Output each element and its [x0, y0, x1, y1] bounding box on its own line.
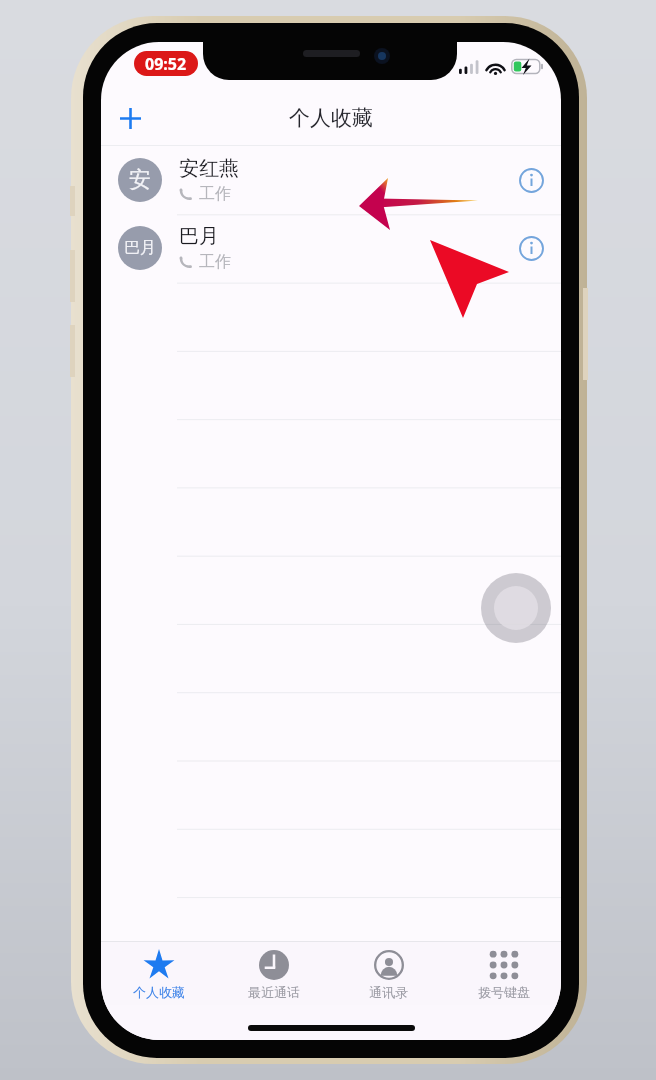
staticText: 工作: [199, 252, 231, 272]
button[interactable]: 最近通话: [216, 942, 331, 1000]
button[interactable]: 安: [101, 146, 561, 214]
button[interactable]: Add favorite: [107, 98, 153, 138]
button[interactable]: Contact info: [514, 163, 548, 197]
button[interactable]: 拨号键盘: [446, 942, 561, 1000]
staticText: 安: [129, 166, 151, 194]
staticText: 最近通话: [248, 984, 300, 1000]
staticText: 工作: [199, 184, 231, 204]
staticText: 通讯录: [369, 984, 408, 1000]
button[interactable]: 个人收藏: [101, 942, 216, 1000]
staticText: 个人收藏: [133, 984, 185, 1000]
button[interactable]: Contact info: [514, 231, 548, 265]
staticText: 安红燕: [179, 156, 239, 181]
staticText: 巴月: [179, 224, 219, 249]
staticText: 巴月: [124, 238, 156, 258]
staticText: 拨号键盘: [478, 984, 530, 1000]
button[interactable]: 巴月: [101, 214, 561, 282]
button[interactable]: 通讯录: [331, 942, 446, 1000]
staticText: 个人收藏: [289, 105, 373, 131]
staticText: 09:52: [145, 53, 187, 75]
